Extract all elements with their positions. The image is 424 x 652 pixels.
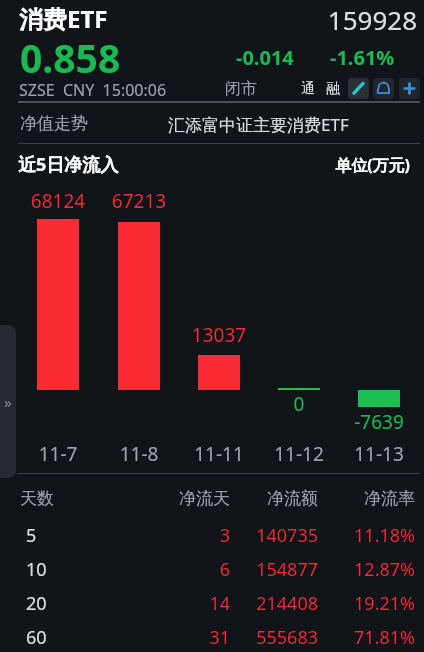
staticText: 净流额 [228,488,318,509]
staticText: 0.858 [20,31,121,84]
staticText: 近5日净流入 [18,152,119,177]
staticText: 3 [140,523,230,548]
staticText: SZSE CNY 15:00:06 [19,79,167,101]
staticText: 31 [140,625,230,650]
staticText: 通 [301,80,315,98]
staticText: » [4,392,12,412]
staticText: 13037 [179,322,259,348]
staticText: 天数 [20,488,54,509]
staticText: 0 [259,391,339,417]
staticText: 60 [26,625,47,650]
staticText: 融 [326,80,340,98]
staticText: 11-11 [179,441,259,467]
button[interactable] [0,517,424,551]
staticText: 11-12 [259,441,339,467]
button[interactable] [0,106,424,143]
staticText: 单位(万元) [300,154,410,176]
staticText: 净流率 [320,488,415,509]
staticText: 10 [26,557,47,582]
staticText: 闭市 [225,79,257,99]
staticText: 14 [140,591,230,616]
staticText: 20 [26,591,47,616]
button[interactable] [0,619,424,652]
staticText: 19.21% [320,591,415,616]
staticText: 154877 [228,557,318,582]
staticText: 555683 [228,625,318,650]
staticText: 消费ETF [19,2,108,35]
button[interactable]: Edit [348,78,369,99]
staticText: 净流天 [140,488,230,509]
staticText: 11-13 [339,441,419,467]
staticText: -0.014 [236,44,294,71]
staticText: 214408 [228,591,318,616]
staticText: 12.87% [320,557,415,582]
button[interactable]: Alert [373,78,394,99]
staticText: 5 [26,523,37,548]
staticText: 159928 [257,2,417,37]
button[interactable]: Add to watchlist [399,78,420,99]
staticText: 71.81% [320,625,415,650]
staticText: -1.61% [330,44,395,71]
staticText: 净值走势 [20,113,88,134]
button[interactable] [0,551,424,585]
button[interactable]: 融 [322,79,344,99]
staticText: 140735 [228,523,318,548]
staticText: 67213 [99,188,179,214]
staticText: 68124 [18,188,98,214]
button[interactable]: Expand panel [0,325,16,478]
button[interactable] [0,585,424,619]
staticText: 11.18% [320,523,415,548]
staticText: 11-8 [99,441,179,467]
staticText: -7639 [339,409,419,435]
button[interactable]: 通 [297,79,319,99]
staticText: 11-7 [18,441,98,467]
staticText: 6 [140,557,230,582]
staticText: 汇添富中证主要消费ETF [168,113,349,136]
